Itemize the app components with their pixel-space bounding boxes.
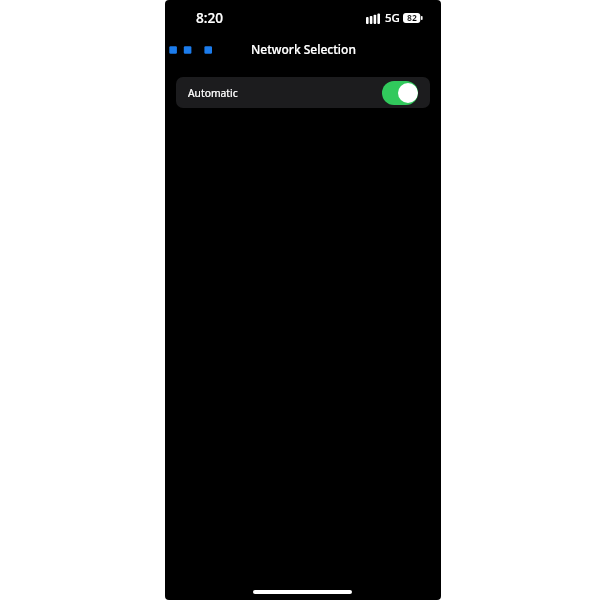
button[interactable]: Back: [166, 40, 214, 60]
staticText: 5G: [385, 10, 400, 26]
other: Battery 82 percent: [403, 12, 423, 24]
button[interactable]: Automatic network selection, on: [382, 81, 418, 105]
staticText: 8:20: [196, 8, 224, 27]
staticText: 82: [407, 12, 417, 24]
staticText: Automatic: [188, 86, 238, 100]
other: Cellular signal strength: [366, 13, 380, 24]
button[interactable]: Automatic: [176, 77, 430, 108]
staticText: Network Selection: [251, 41, 356, 57]
